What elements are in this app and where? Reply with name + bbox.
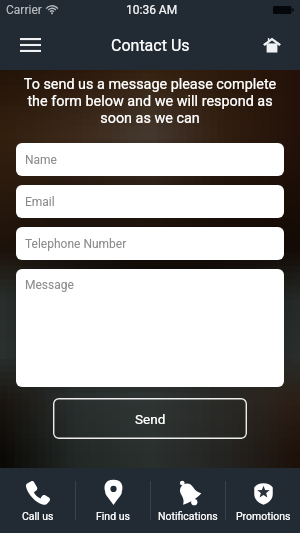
button[interactable]: Message (16, 269, 284, 387)
button[interactable]: Notifications (151, 468, 225, 533)
staticText: Promotions (236, 510, 291, 522)
button[interactable]: Home (250, 23, 294, 67)
staticText: Telephone Number (25, 237, 127, 251)
staticText: Call us (22, 510, 54, 522)
button[interactable]: Call us (0, 468, 75, 533)
button[interactable]: Telephone Number (16, 227, 284, 260)
staticText: Message (25, 278, 74, 292)
staticText: Contact Us (111, 36, 190, 55)
button[interactable]: Name (16, 143, 284, 176)
staticText: To send us a message please complete the… (6, 76, 294, 127)
button[interactable]: Open navigation menu (8, 23, 52, 67)
button[interactable]: Promotions (226, 468, 300, 533)
staticText: Send (135, 411, 166, 427)
button[interactable]: Find us (76, 468, 150, 533)
staticText: Email (25, 195, 55, 209)
staticText: Notifications (158, 510, 218, 522)
staticText: Carrier (6, 3, 42, 17)
staticText: Find us (96, 510, 130, 522)
staticText: 10:36 AM (126, 3, 178, 17)
button[interactable]: Send (53, 398, 247, 439)
button[interactable]: Email (16, 185, 284, 218)
staticText: Name (25, 153, 57, 167)
